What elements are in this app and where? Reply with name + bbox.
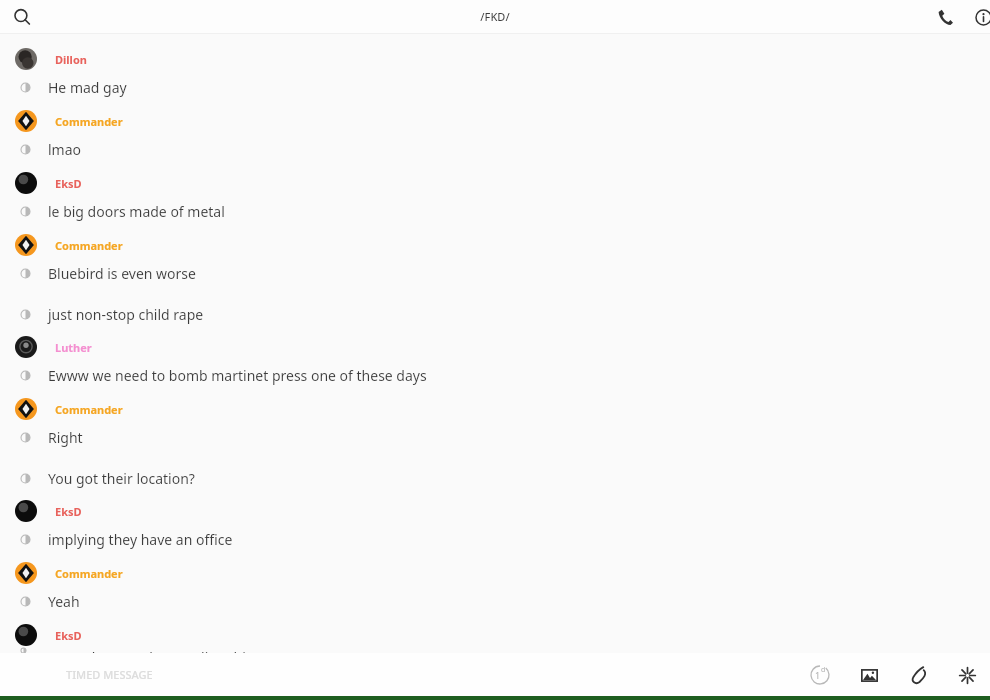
staticText: He mad gay xyxy=(48,78,127,97)
button[interactable]: Luther xyxy=(0,334,990,396)
staticText: Bluebird is even worse xyxy=(48,264,196,283)
staticText: lmao xyxy=(48,140,82,159)
staticText: arent they purely an online thing xyxy=(48,648,264,653)
staticText: EksD xyxy=(55,176,82,191)
button[interactable]: You got their location? xyxy=(0,458,990,498)
staticText: /FKD/ xyxy=(480,9,510,24)
button[interactable]: Commander xyxy=(0,560,990,622)
staticText: Luther xyxy=(55,340,92,355)
button[interactable]: Dillon xyxy=(0,46,990,108)
button[interactable]: TIMED MESSAGE xyxy=(66,667,153,682)
button[interactable]: Commander xyxy=(0,232,990,294)
staticText: le big doors made of metal xyxy=(48,202,225,221)
staticText: Ewww we need to bomb martinet press one … xyxy=(48,366,427,385)
staticText: Yeah xyxy=(48,592,80,611)
button[interactable]: EksD xyxy=(0,170,990,232)
button[interactable]: More actions xyxy=(950,658,984,692)
button[interactable]: Search xyxy=(6,1,38,33)
staticText: You got their location? xyxy=(48,469,195,488)
button[interactable]: Message timer 1 day xyxy=(802,657,838,693)
button[interactable]: EksD xyxy=(0,498,990,560)
staticText: Dillon xyxy=(55,52,87,67)
staticText: Commander xyxy=(55,114,123,129)
staticText: 1 xyxy=(815,669,821,681)
staticText: Commander xyxy=(55,238,123,253)
button[interactable]: EksD xyxy=(0,622,990,653)
staticText: Right xyxy=(48,428,83,447)
staticText: d xyxy=(821,665,826,675)
staticText: Commander xyxy=(55,566,123,581)
button[interactable]: Commander xyxy=(0,108,990,170)
button[interactable]: Attach file xyxy=(902,658,936,692)
staticText: EksD xyxy=(55,504,82,519)
button[interactable]: Commander xyxy=(0,396,990,458)
button[interactable]: Call xyxy=(930,2,960,32)
staticText: implying they have an office xyxy=(48,530,233,549)
button[interactable]: just non-stop child rape xyxy=(0,294,990,334)
button[interactable]: Send image xyxy=(852,658,886,692)
button[interactable]: Info xyxy=(968,2,990,32)
staticText: just non-stop child rape xyxy=(48,305,204,324)
staticText: Commander xyxy=(55,402,123,417)
staticText: EksD xyxy=(55,628,82,643)
